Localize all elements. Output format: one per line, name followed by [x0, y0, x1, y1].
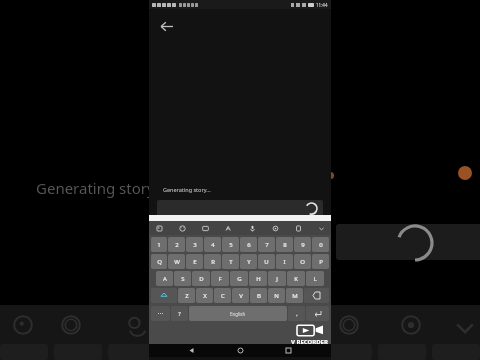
button[interactable]: K: [287, 271, 305, 286]
staticText: 7: [265, 241, 269, 249]
button[interactable]: B: [250, 288, 267, 303]
button[interactable]: 9: [294, 237, 311, 252]
staticText: E: [193, 258, 197, 266]
button[interactable]: A: [156, 271, 173, 286]
staticText: ,: [296, 310, 298, 317]
button[interactable]: Z: [178, 288, 195, 303]
button[interactable]: P: [312, 254, 329, 269]
button[interactable]: Home: [234, 344, 247, 357]
staticText: P: [319, 258, 323, 266]
button[interactable]: Shift: [151, 288, 177, 303]
button[interactable]: 5: [222, 237, 239, 252]
button[interactable]: U: [258, 254, 275, 269]
button[interactable]: W: [168, 254, 185, 269]
button[interactable]: More: [314, 221, 328, 235]
button[interactable]: Space: [189, 306, 287, 321]
staticText: 6: [247, 241, 251, 249]
button[interactable]: 1: [151, 237, 167, 252]
staticText: U: [264, 258, 269, 266]
staticText: X: [203, 292, 207, 300]
staticText: J: [276, 275, 278, 283]
staticText: English: [230, 311, 246, 317]
button[interactable]: Translate: [221, 221, 235, 235]
button[interactable]: G: [230, 271, 248, 286]
button[interactable]: 3: [186, 237, 203, 252]
button[interactable]: [157, 200, 323, 217]
button[interactable]: Backspace: [304, 288, 329, 303]
staticText: D: [199, 275, 204, 283]
staticText: 4: [211, 241, 215, 249]
button[interactable]: I: [276, 254, 293, 269]
button[interactable]: O: [294, 254, 311, 269]
staticText: I: [283, 258, 286, 266]
staticText: 5: [229, 241, 233, 249]
button[interactable]: 8: [276, 237, 293, 252]
staticText: T: [229, 258, 233, 266]
staticText: G: [237, 275, 242, 283]
button[interactable]: Recent apps: [282, 344, 295, 357]
staticText: W: [174, 258, 180, 266]
staticText: 0: [319, 241, 323, 249]
button[interactable]: Voice input: [245, 221, 259, 235]
staticText: 1: [157, 241, 161, 249]
button[interactable]: T: [222, 254, 239, 269]
staticText: B: [257, 292, 261, 300]
staticText: 9: [301, 241, 305, 249]
staticText: Q: [157, 258, 162, 266]
staticText: V RECORDER: [291, 338, 328, 346]
button[interactable]: Symbols: [151, 306, 170, 321]
staticText: V: [239, 292, 243, 300]
button[interactable]: E: [186, 254, 203, 269]
button[interactable]: ,: [288, 306, 305, 321]
button[interactable]: 6: [240, 237, 257, 252]
button[interactable]: J: [268, 271, 286, 286]
button[interactable]: Y: [240, 254, 257, 269]
staticText: M: [292, 292, 298, 300]
staticText: A: [163, 275, 167, 283]
staticText: 11:44: [316, 2, 328, 8]
button[interactable]: X: [196, 288, 213, 303]
staticText: F: [218, 275, 222, 283]
staticText: 2: [175, 241, 179, 249]
button[interactable]: Q: [151, 254, 167, 269]
button[interactable]: S: [174, 271, 191, 286]
button[interactable]: Clipboard: [291, 221, 305, 235]
staticText: ?: [178, 310, 181, 317]
staticText: H: [256, 275, 261, 283]
button[interactable]: ?: [171, 306, 188, 321]
button[interactable]: Enter: [306, 306, 329, 321]
staticText: 8: [283, 241, 287, 249]
staticText: O: [300, 258, 305, 266]
button[interactable]: R: [204, 254, 221, 269]
staticText: N: [274, 292, 279, 300]
button[interactable]: D: [192, 271, 210, 286]
staticText: S: [181, 275, 185, 283]
button[interactable]: Emoji: [175, 221, 189, 235]
staticText: K: [294, 275, 298, 283]
button[interactable]: N: [268, 288, 285, 303]
button[interactable]: F: [211, 271, 229, 286]
button[interactable]: 4: [204, 237, 221, 252]
button[interactable]: Stickers: [152, 221, 166, 235]
staticText: C: [221, 292, 225, 300]
button[interactable]: 0: [312, 237, 329, 252]
button[interactable]: L: [306, 271, 324, 286]
button[interactable]: Back: [155, 15, 177, 37]
staticText: L: [313, 275, 317, 283]
staticText: Generating story...: [36, 178, 167, 198]
button[interactable]: H: [249, 271, 267, 286]
staticText: Generating story...: [163, 186, 211, 193]
button[interactable]: GIF: [198, 221, 212, 235]
button[interactable]: 2: [168, 237, 185, 252]
button[interactable]: C: [214, 288, 231, 303]
button[interactable]: Settings: [268, 221, 282, 235]
staticText: Z: [185, 292, 189, 300]
staticText: R: [211, 258, 215, 266]
staticText: Y: [247, 258, 251, 266]
button[interactable]: Back: [185, 344, 198, 357]
button[interactable]: V: [232, 288, 249, 303]
staticText: 3: [193, 241, 197, 249]
button[interactable]: M: [286, 288, 303, 303]
button[interactable]: 7: [258, 237, 275, 252]
